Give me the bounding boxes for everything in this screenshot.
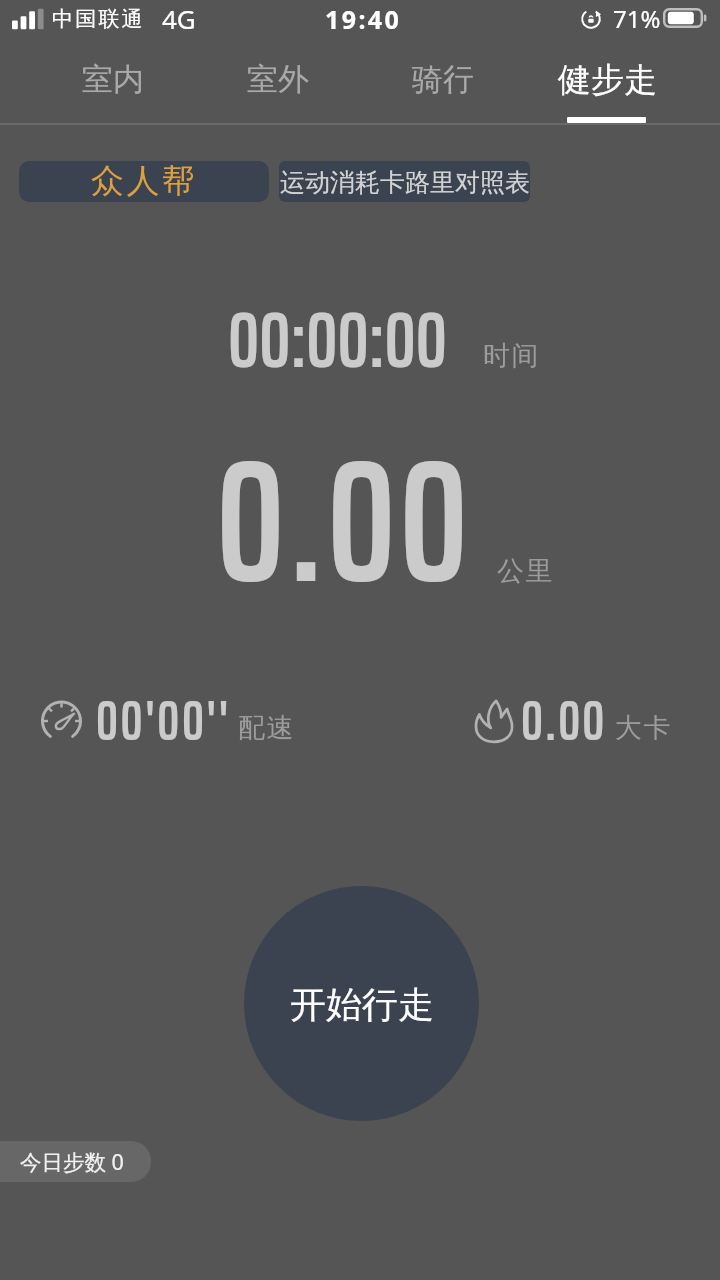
button[interactable]: 今日步数 0 [0, 1141, 151, 1182]
button[interactable]: 骑行 [360, 38, 525, 123]
staticText: 运动消耗卡路里对照表 [280, 167, 530, 198]
staticText: 开始行走 [290, 982, 434, 1027]
staticText: 时间 [483, 339, 541, 373]
other: Battery 71 percent [663, 8, 707, 29]
button[interactable]: 运动消耗卡路里对照表 [279, 161, 530, 202]
button[interactable]: 健步走 [525, 38, 690, 123]
staticText: 00:00:00 [228, 278, 447, 401]
staticText: 室内 [82, 60, 144, 99]
button[interactable]: 室外 [195, 38, 360, 123]
staticText: 公里 [497, 554, 555, 588]
staticText: 健步走 [558, 59, 657, 101]
staticText: 今日步数 0 [20, 1147, 124, 1176]
other: Calories [475, 700, 513, 742]
staticText: 配速 [238, 711, 296, 745]
staticText: 众人帮 [91, 161, 198, 201]
staticText: 室外 [247, 60, 309, 99]
other: Rotation lock [581, 9, 601, 29]
button[interactable]: 众人帮 [19, 161, 269, 202]
staticText: 19:40 [325, 2, 402, 36]
staticText: 00'00'' [96, 678, 231, 765]
staticText: 中国联通 [52, 6, 145, 32]
other: Pace [39, 700, 84, 742]
button[interactable]: 开始行走 [244, 886, 479, 1121]
staticText: 骑行 [412, 60, 474, 99]
staticText: 大卡 [615, 711, 673, 745]
button[interactable]: 室内 [30, 38, 195, 123]
staticText: 0.00 [521, 678, 607, 765]
staticText: 71% [613, 2, 661, 35]
staticText: 0.00 [216, 386, 472, 657]
staticText: 4G [162, 1, 196, 36]
